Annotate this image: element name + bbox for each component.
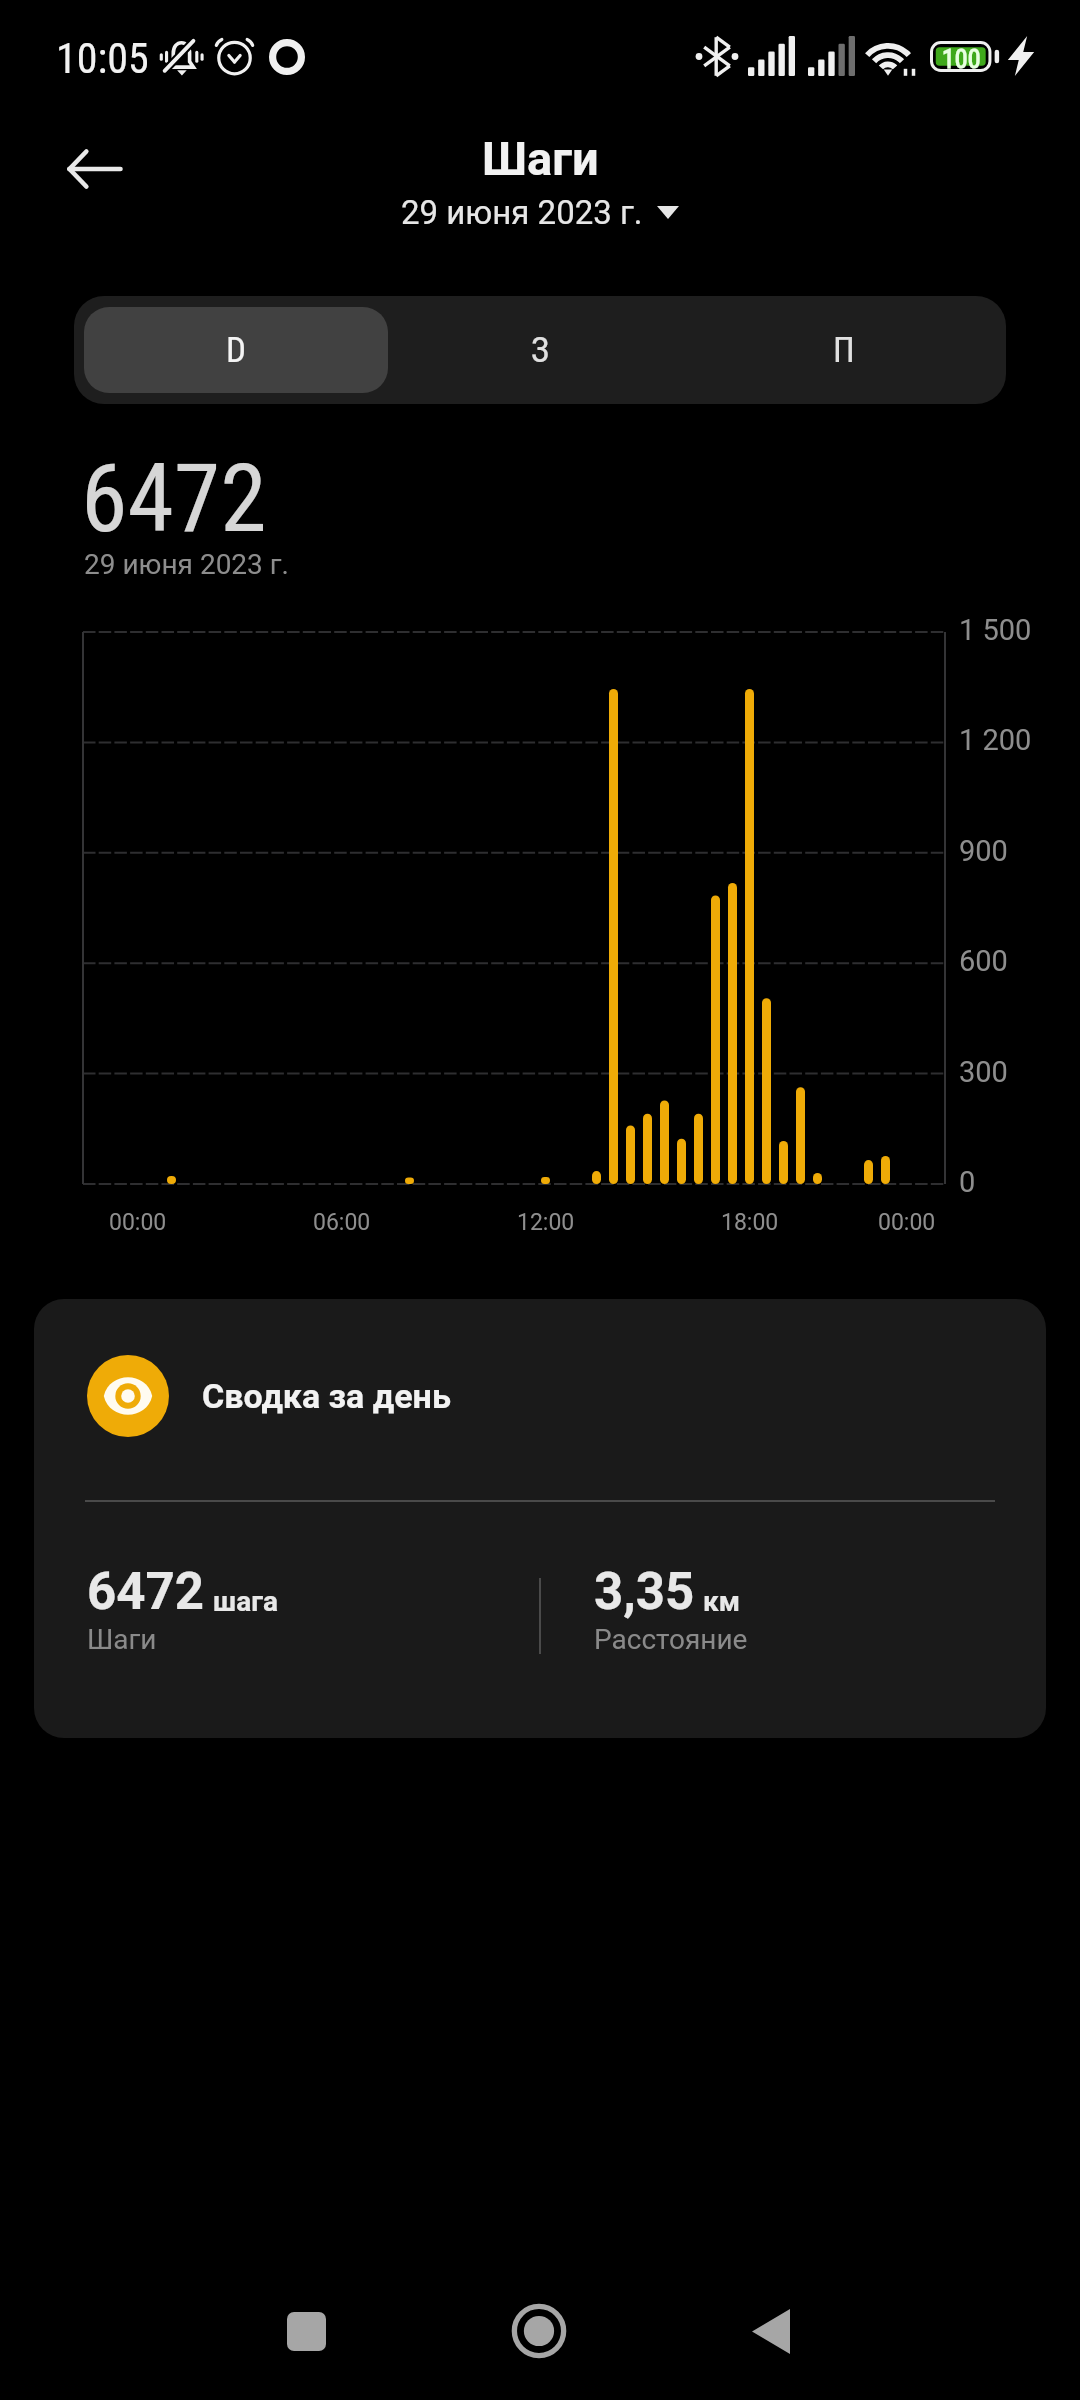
button[interactable]: Recents	[236, 2281, 376, 2381]
staticText: D	[226, 330, 246, 371]
staticText: 1 500	[959, 613, 1032, 647]
staticText: 29 июня 2023 г.	[84, 548, 289, 581]
button[interactable]: П	[692, 307, 996, 393]
staticText: П	[833, 330, 855, 371]
staticText: 6472	[81, 444, 267, 554]
button[interactable]: Home	[469, 2281, 609, 2381]
staticText: 00:00	[109, 1209, 167, 1236]
staticText: Шаги	[87, 1623, 157, 1656]
staticText: 6472	[87, 1562, 205, 1622]
button[interactable]: Back	[48, 122, 142, 216]
staticText: 3,35	[594, 1562, 695, 1622]
staticText: 10:05	[56, 34, 149, 83]
staticText: 12:00	[517, 1209, 575, 1236]
staticText: Расстояние	[594, 1623, 748, 1656]
staticText: 900	[959, 834, 1008, 868]
staticText: Шаги	[482, 131, 599, 186]
staticText: 1 200	[959, 723, 1032, 757]
staticText: шага	[213, 1585, 278, 1618]
staticText: 06:00	[313, 1209, 371, 1236]
staticText: 29 июня 2023 г.	[401, 193, 643, 232]
button[interactable]: 29 июня 2023 г.	[393, 191, 687, 234]
staticText: 300	[959, 1055, 1008, 1089]
staticText: км	[703, 1585, 741, 1618]
staticText: Сводка за день	[202, 1376, 451, 1416]
button[interactable]: Сводка за день	[34, 1299, 1046, 1738]
staticText: 0	[959, 1165, 976, 1199]
staticText: 18:00	[721, 1209, 779, 1236]
button[interactable]: D	[84, 307, 388, 393]
staticText: 100	[942, 44, 981, 74]
button[interactable]: Back	[701, 2281, 841, 2381]
staticText: 00:00	[878, 1209, 936, 1236]
button[interactable]: З	[388, 307, 692, 393]
staticText: 600	[959, 944, 1008, 978]
staticText: З	[531, 330, 550, 371]
